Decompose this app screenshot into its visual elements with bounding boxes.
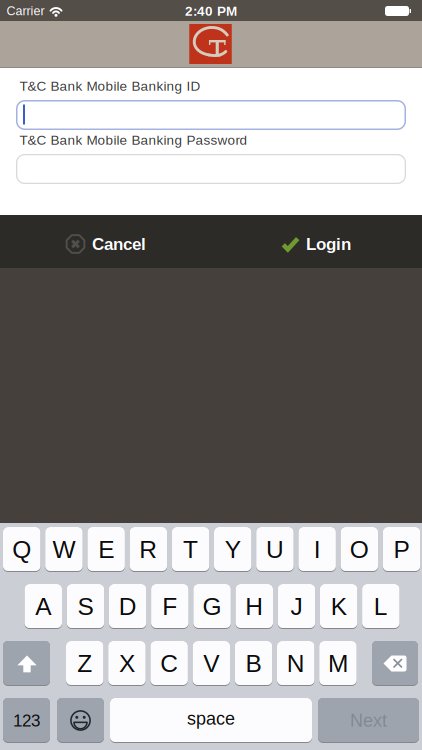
button[interactable]: J [278,584,315,629]
staticText: V [203,650,219,677]
button[interactable]: G [193,584,231,629]
staticText: F [162,593,177,620]
staticText: W [52,536,75,563]
button[interactable]: U [256,527,294,572]
button[interactable]: Emoji [57,698,104,743]
staticText: U [266,536,284,563]
staticText: H [245,593,263,620]
staticText: T&C Bank Mobile Banking Password [19,132,247,148]
button[interactable]: P [383,527,420,572]
button[interactable]: T [172,527,209,572]
button[interactable]: H [235,584,273,629]
button[interactable]: Login [281,234,351,253]
staticText: 123 [13,711,40,730]
button[interactable]: Next [318,698,419,743]
staticText: R [139,536,157,563]
staticText: I [314,536,321,563]
staticText: Y [225,536,241,563]
staticText: 2:40 PM [185,3,237,19]
staticText: Next [350,710,387,730]
staticText: P [394,536,410,563]
staticText: O [350,536,369,563]
button[interactable]: X [108,641,146,686]
staticText: G [203,593,222,620]
button[interactable]: K [320,584,357,629]
button[interactable]: space [110,698,312,743]
staticText: K [331,593,347,620]
button[interactable]: L [362,584,400,629]
button[interactable]: I [298,527,336,572]
button[interactable]: T&C Bank Mobile Banking Password [16,154,406,184]
button[interactable]: V [193,641,230,686]
button[interactable]: M [319,641,357,686]
button[interactable]: Q [3,527,40,572]
button[interactable]: A [24,584,62,629]
staticText: S [77,593,93,620]
staticText: L [374,593,388,620]
button[interactable]: O [341,527,378,572]
button[interactable]: Y [214,527,251,572]
staticText: B [246,650,262,677]
staticText: E [98,536,114,563]
button[interactable]: E [87,527,125,572]
staticText: Cancel [92,234,146,253]
staticText: D [119,593,137,620]
button[interactable]: C [150,641,188,686]
button[interactable]: Shift [3,641,50,686]
button[interactable]: Numbers [3,698,50,743]
staticText: T&C Bank Mobile Banking ID [19,78,200,94]
button[interactable]: D [109,584,146,629]
staticText: T [183,536,198,563]
button[interactable]: Cancel [65,233,146,254]
staticText: space [187,708,235,728]
button[interactable]: B [235,641,272,686]
staticText: M [328,650,348,677]
staticText: Z [77,650,92,677]
staticText: Login [306,234,351,253]
staticText: X [119,650,135,677]
staticText: Carrier [6,4,44,18]
staticText: C [160,650,178,677]
staticText: J [290,593,302,620]
staticText: A [35,593,51,620]
button[interactable]: T&C Bank Mobile Banking ID [16,100,406,130]
button[interactable]: Delete [372,641,418,686]
button[interactable]: Z [66,641,103,686]
button[interactable]: R [130,527,167,572]
staticText: N [287,650,305,677]
staticText: Q [12,536,31,563]
button[interactable]: W [45,527,83,572]
button[interactable]: N [277,641,314,686]
button[interactable]: S [67,584,104,629]
button[interactable]: F [151,584,189,629]
